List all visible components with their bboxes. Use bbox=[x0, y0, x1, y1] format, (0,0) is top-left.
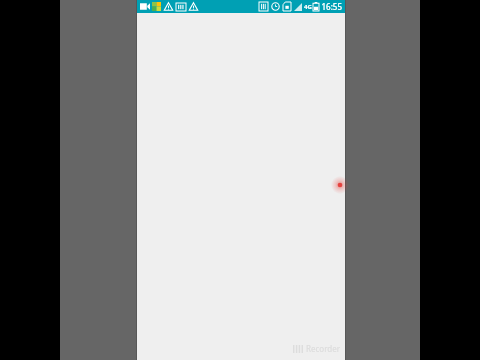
button[interactable]: Touch indicator bbox=[331, 176, 349, 194]
staticText: Recorder bbox=[306, 343, 341, 354]
staticText: 16:55 bbox=[321, 1, 342, 12]
staticText: 4G bbox=[304, 3, 312, 11]
